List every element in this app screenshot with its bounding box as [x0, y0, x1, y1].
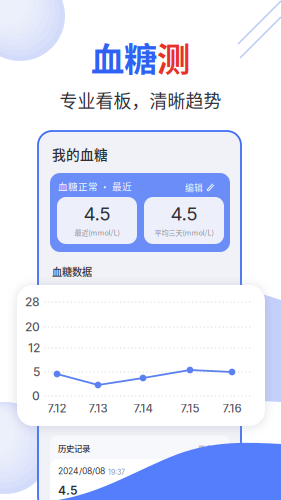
staticText: 我的血糖 [52, 144, 108, 164]
staticText: 20 [25, 320, 40, 334]
staticText: 19:37 [108, 468, 125, 476]
button[interactable]: 编辑 [183, 179, 218, 196]
staticText: 4.5 [83, 202, 110, 225]
staticText: 7.16 [222, 402, 241, 415]
staticText: 0 [32, 389, 40, 403]
staticText: 28 [25, 295, 40, 309]
staticText: 血糖数据 [52, 264, 92, 279]
staticText: 12 [28, 341, 40, 355]
staticText: 7.13 [88, 402, 107, 415]
staticText: 测 [157, 33, 190, 81]
staticText: 血糖正常 · 最近 [58, 179, 132, 193]
staticText: 7.12 [47, 402, 66, 415]
staticText: 5 [33, 365, 40, 379]
staticText: 4.5 [58, 483, 78, 497]
staticText: 最近(mmol/L) [74, 227, 119, 237]
staticText: 血糖 [91, 33, 157, 81]
staticText: 2024/08/08 [58, 466, 105, 476]
staticText: 更多 > [198, 443, 218, 453]
staticText: 4.5 [170, 202, 197, 225]
staticText: 历史记录 [58, 442, 90, 454]
staticText: 编辑 [185, 181, 203, 194]
staticText: 专业看板，清晰趋势 [59, 87, 221, 113]
button[interactable]: 更多 > [196, 441, 220, 455]
staticText: 平均三天(mmol/L) [154, 227, 213, 237]
staticText: 7.15 [180, 402, 199, 415]
staticText: 7.14 [133, 402, 152, 415]
